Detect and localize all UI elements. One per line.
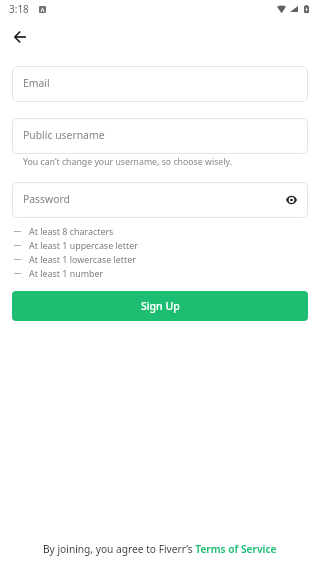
- button[interactable]: Sign Up: [12, 291, 308, 321]
- button[interactable]: Back: [6, 23, 34, 51]
- staticText: By joining, you agree to Fiverr’s Terms …: [43, 542, 277, 556]
- button[interactable]: Email: [12, 66, 308, 102]
- staticText: At least 8 characters: [29, 225, 114, 237]
- button[interactable]: Password: [12, 182, 308, 218]
- staticText: You can’t change your username, so choos…: [23, 156, 232, 168]
- button[interactable]: At least 8 characters: [14, 225, 114, 237]
- button[interactable]: Show password: [279, 188, 303, 212]
- staticText: At least 1 lowercase letter: [29, 253, 136, 265]
- staticText: At least 1 number: [29, 267, 104, 279]
- button[interactable]: At least 1 number: [14, 267, 104, 279]
- staticText: Email: [23, 76, 50, 90]
- button[interactable]: By joining, you agree to Fiverr’s Terms …: [43, 542, 277, 556]
- staticText: Sign Up: [141, 299, 180, 313]
- staticText: At least 1 uppercase letter: [29, 239, 138, 251]
- button[interactable]: At least 1 lowercase letter: [14, 253, 136, 265]
- staticText: Public username: [23, 128, 105, 142]
- button[interactable]: Public username: [12, 118, 308, 154]
- staticText: Password: [23, 192, 70, 206]
- staticText: 3:18: [9, 2, 29, 16]
- button[interactable]: At least 1 uppercase letter: [14, 239, 138, 251]
